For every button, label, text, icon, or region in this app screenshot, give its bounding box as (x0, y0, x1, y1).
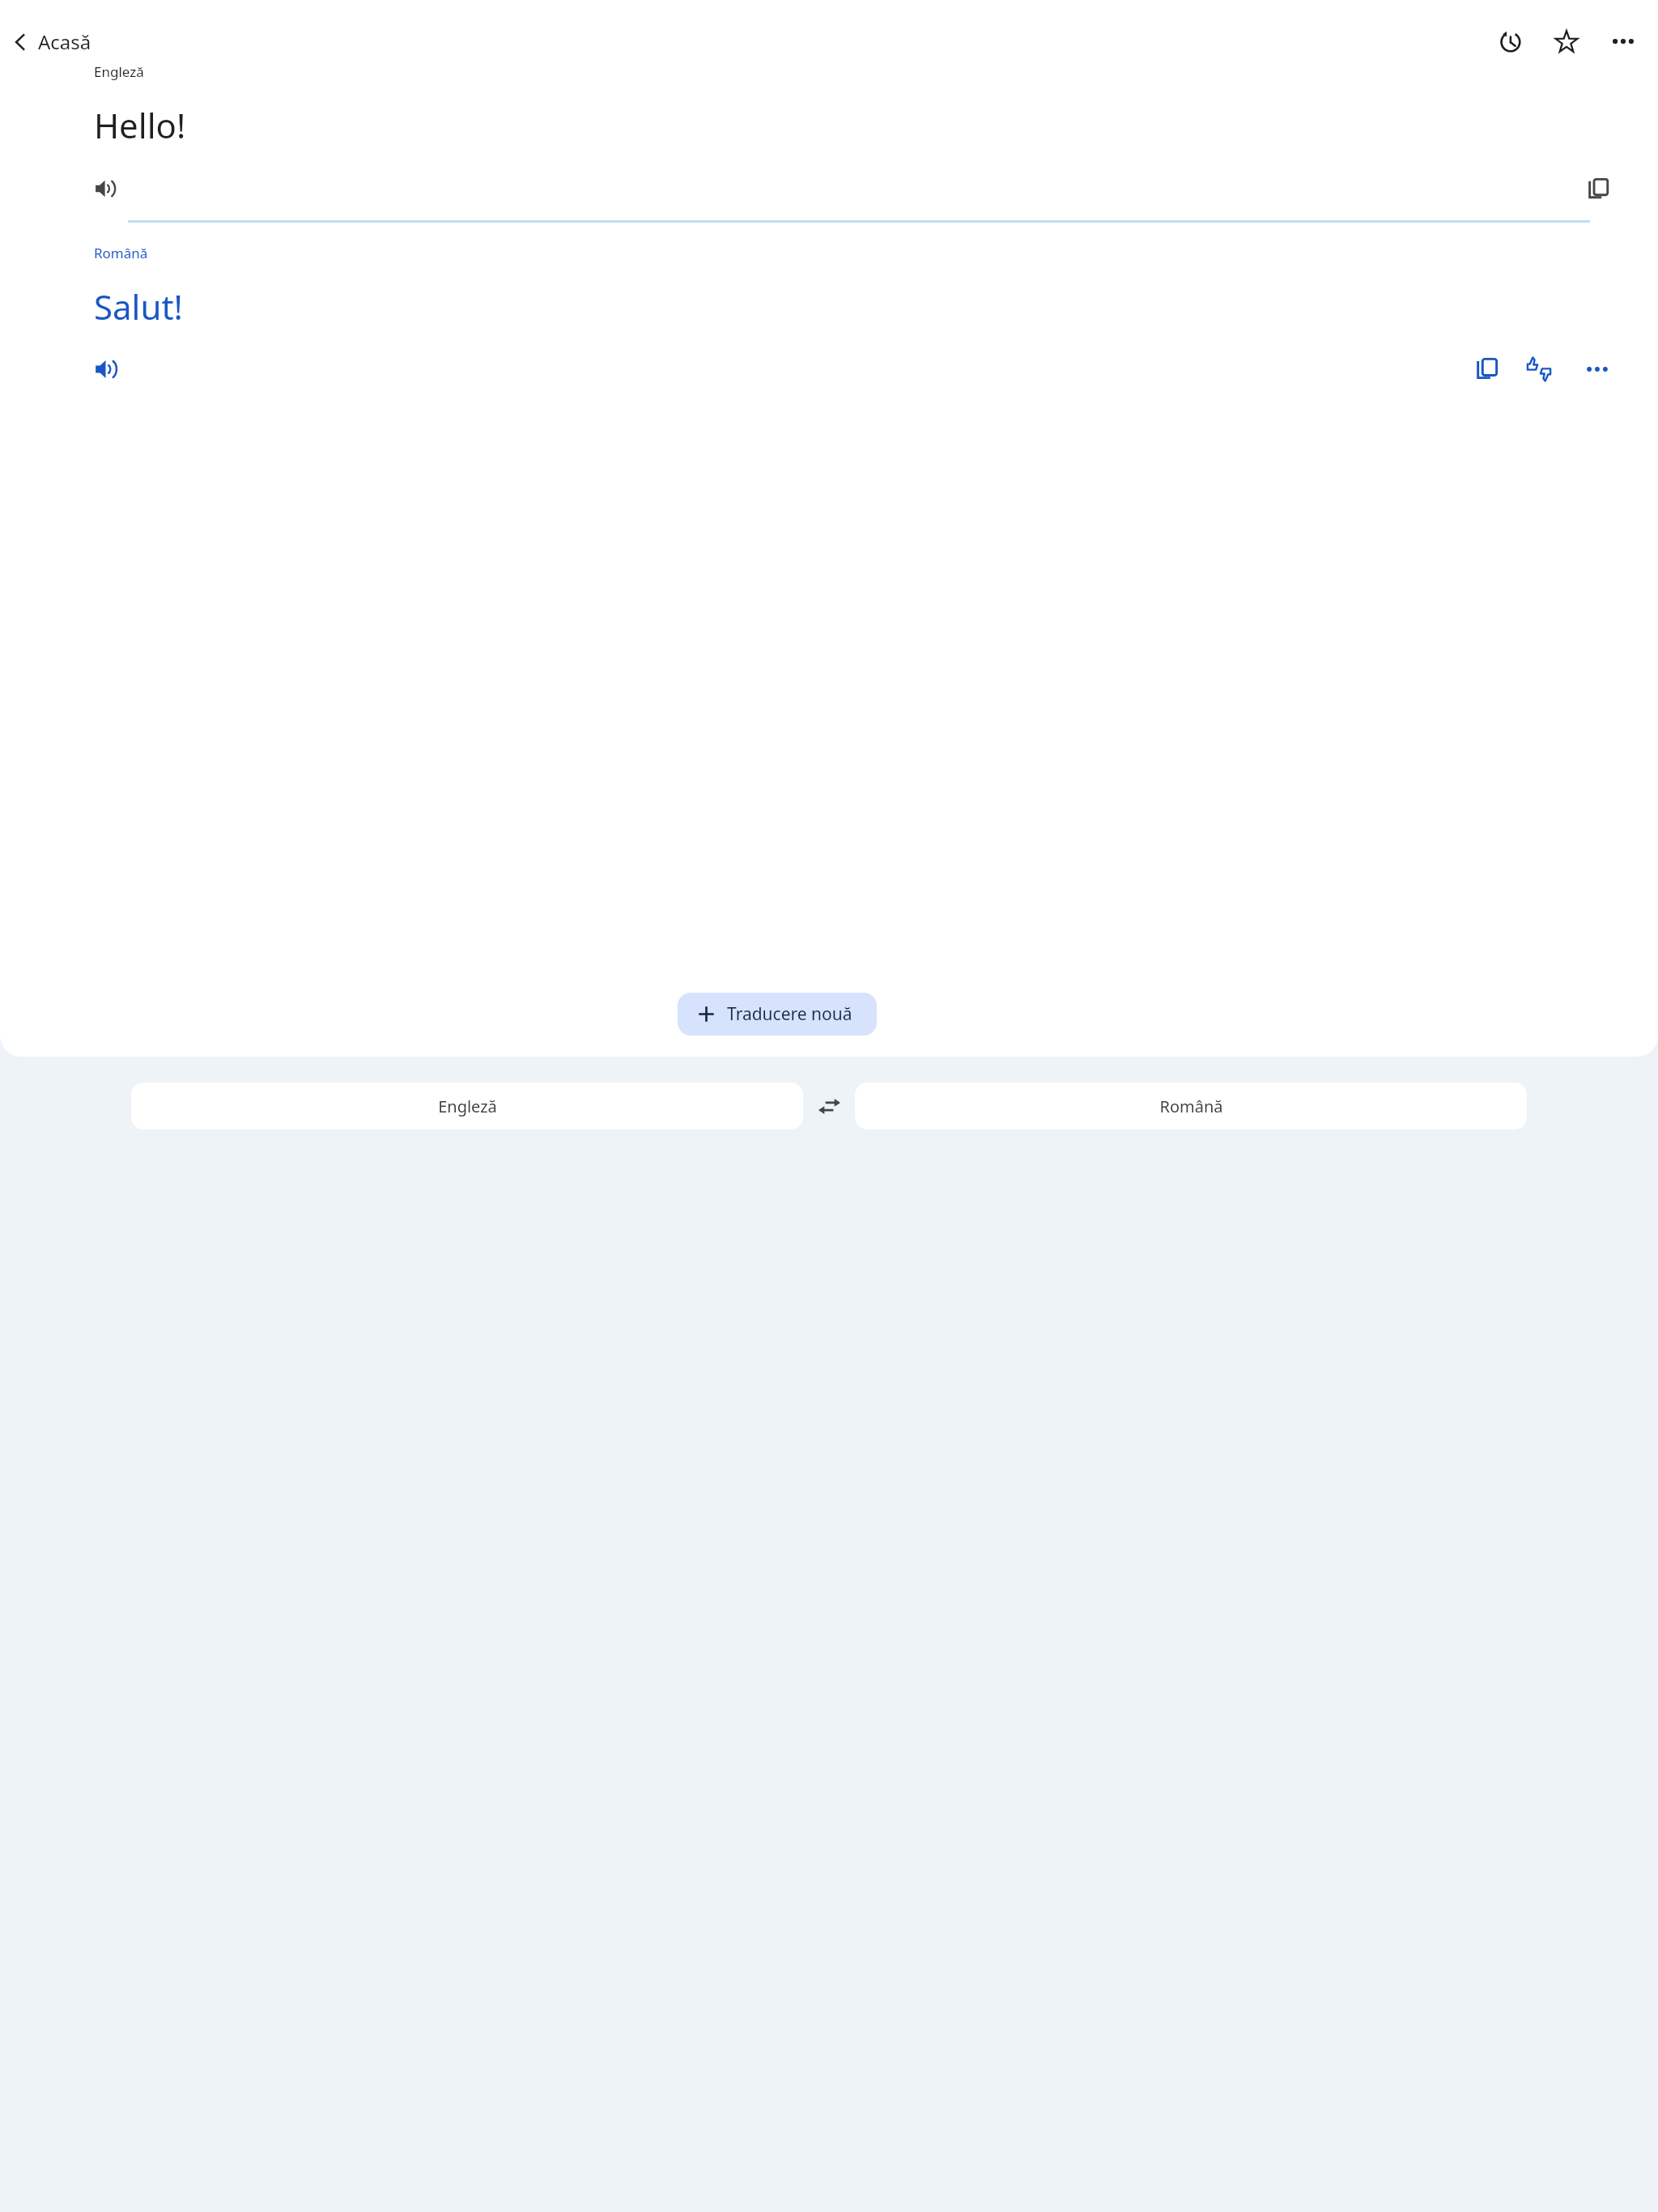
button[interactable]: More translation options (1575, 347, 1620, 392)
button[interactable]: Engleză (94, 62, 144, 81)
staticText: Acasă (38, 28, 91, 55)
button[interactable]: Save to phrasebook (1541, 16, 1592, 66)
button[interactable]: Engleză (131, 1083, 803, 1129)
button[interactable]: Listen to source text (83, 166, 129, 211)
button[interactable]: Salut! (94, 283, 183, 330)
button[interactable]: Rate this translation (1516, 347, 1562, 392)
button[interactable]: Română (94, 244, 148, 262)
button[interactable]: Acasă (3, 23, 98, 60)
button[interactable]: History (1485, 16, 1535, 66)
button[interactable]: Swap languages (803, 1080, 855, 1132)
button[interactable]: Copy source text (1576, 166, 1622, 211)
button[interactable]: Română (855, 1083, 1527, 1129)
staticText: Engleză (438, 1095, 497, 1117)
staticText: Traducere nouă (727, 1002, 852, 1026)
button[interactable]: Traducere nouă (678, 993, 877, 1036)
staticText: Română (1159, 1095, 1223, 1117)
button[interactable]: Hello! (94, 102, 186, 148)
button[interactable]: Copy translation (1465, 347, 1511, 392)
button[interactable]: Listen to translation (83, 346, 130, 393)
button[interactable]: More options (1598, 16, 1648, 66)
